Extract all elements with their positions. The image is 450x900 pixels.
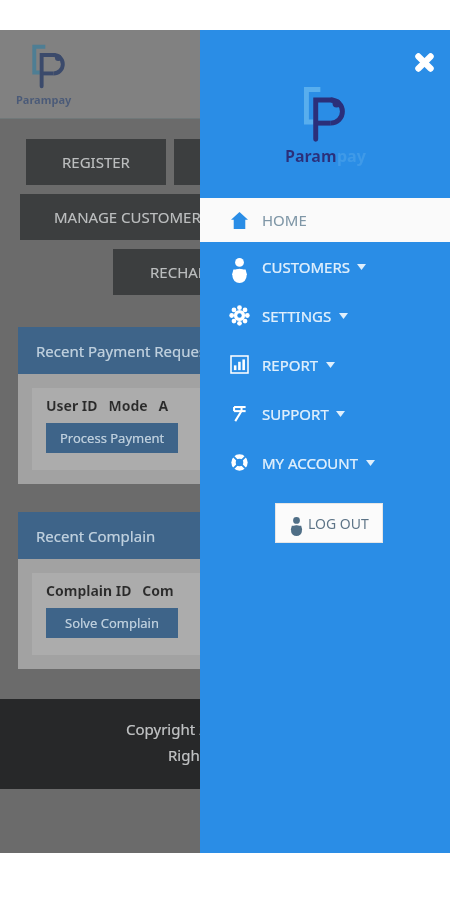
staticText: User ID Mode A: [46, 396, 169, 415]
staticText: Process Payment: [60, 429, 165, 447]
button[interactable]: MANAGE CUSTOMER: [20, 194, 235, 240]
button[interactable]: RECHARGE: [113, 249, 263, 295]
button[interactable]: HOME: [200, 198, 450, 242]
staticText: CUSTOMERS: [262, 257, 350, 277]
button[interactable]: Solve Complain: [46, 608, 178, 638]
staticText: RECHARGE: [150, 262, 227, 282]
button[interactable]: MY ACCOUNT: [200, 438, 450, 487]
staticText: Parampay: [16, 92, 72, 107]
staticText: Recent Payment Request: [36, 341, 212, 361]
staticText: MANAGE CUSTOMER: [54, 207, 201, 227]
staticText: pay: [337, 145, 366, 167]
staticText: MY ACCOUNT: [262, 453, 359, 473]
staticText: LOG OUT: [308, 514, 369, 533]
staticText: REGISTER: [62, 152, 130, 172]
staticText: HOME: [262, 210, 307, 230]
staticText: Copyright 2020 © parampay: [126, 719, 325, 739]
button[interactable]: Close menu: [406, 44, 442, 80]
staticText: Complain ID Com: [46, 581, 174, 600]
button[interactable]: REPORT: [200, 340, 450, 389]
button[interactable]: SETTINGS: [200, 291, 450, 340]
button[interactable]: SUPPORT: [200, 389, 450, 438]
button[interactable]: LOG OUT: [275, 503, 383, 543]
button[interactable]: REGISTER: [26, 139, 166, 185]
staticText: Solve Complain: [65, 614, 159, 632]
button[interactable]: CUSTOMERS: [200, 242, 450, 291]
staticText: SETTINGS: [262, 306, 332, 326]
staticText: SUPPORT: [262, 404, 329, 424]
button[interactable]: BALANCE: [174, 139, 314, 185]
staticText: REPORT: [262, 355, 319, 375]
staticText: Param: [285, 145, 337, 167]
staticText: Recent Complain: [36, 526, 156, 546]
staticText: Rights Reserved: [168, 745, 282, 765]
button[interactable]: Process Payment: [46, 423, 178, 453]
